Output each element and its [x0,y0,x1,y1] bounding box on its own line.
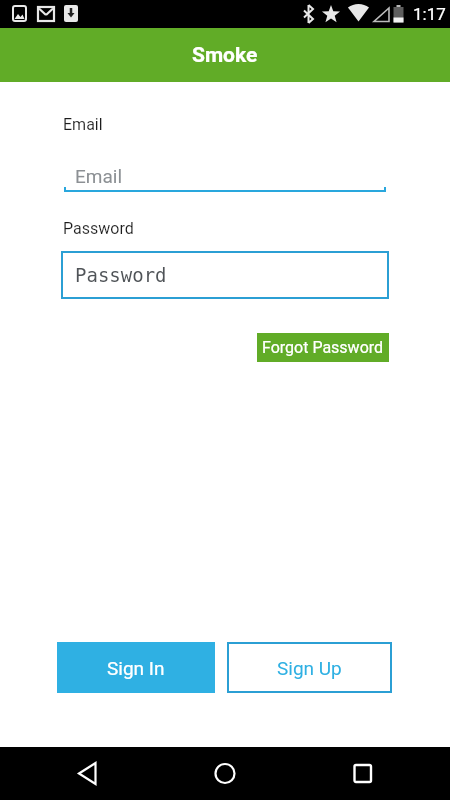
staticText: 1:17 [413,4,446,24]
staticText: Forgot Password [262,338,384,357]
staticText: Email [75,165,123,187]
staticText: Sign In [107,657,165,679]
staticText: Password [63,219,134,238]
button[interactable]: Forgot Password [257,333,389,362]
staticText: Smoke [192,43,258,68]
staticText: Password [75,264,167,286]
button[interactable]: Password [61,251,389,299]
staticText: Email [63,115,103,134]
button[interactable]: Sign In [57,642,215,693]
button[interactable]: Sign Up [227,642,392,693]
button[interactable]: Email [63,152,386,192]
staticText: Sign Up [277,657,342,679]
